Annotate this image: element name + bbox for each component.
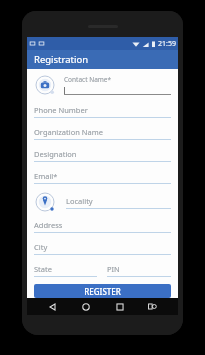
- staticText: Phone Number: [34, 105, 88, 115]
- button[interactable]: Add contact photo: [34, 74, 56, 96]
- button[interactable]: Recent apps: [111, 298, 128, 315]
- button[interactable]: PIN: [107, 264, 171, 277]
- button[interactable]: Locality: [66, 196, 171, 209]
- staticText: State: [34, 264, 52, 274]
- staticText: Locality: [66, 196, 93, 206]
- button[interactable]: Address: [34, 220, 171, 233]
- staticText: 21:59: [158, 39, 176, 49]
- staticText: Organization Name: [34, 127, 103, 137]
- button[interactable]: Screenshot: [144, 298, 161, 315]
- staticText: Contact Name*: [64, 75, 112, 84]
- staticText: Address: [34, 220, 63, 230]
- button[interactable]: [64, 86, 171, 95]
- staticText: City: [34, 242, 48, 252]
- button[interactable]: Back: [44, 298, 61, 315]
- staticText: PIN: [107, 264, 120, 274]
- button[interactable]: Home: [77, 298, 94, 315]
- staticText: Email*: [34, 171, 58, 181]
- staticText: REGISTER: [84, 286, 121, 297]
- staticText: Designation: [34, 149, 77, 159]
- button[interactable]: Email*: [34, 171, 171, 184]
- button[interactable]: Organization Name: [34, 127, 171, 140]
- staticText: Registration: [34, 53, 89, 66]
- button[interactable]: Designation: [34, 149, 171, 162]
- button[interactable]: State: [34, 264, 97, 277]
- button[interactable]: REGISTER: [34, 284, 171, 298]
- button[interactable]: Phone Number: [34, 105, 171, 118]
- button[interactable]: Pick location: [34, 191, 56, 213]
- button[interactable]: City: [34, 242, 171, 255]
